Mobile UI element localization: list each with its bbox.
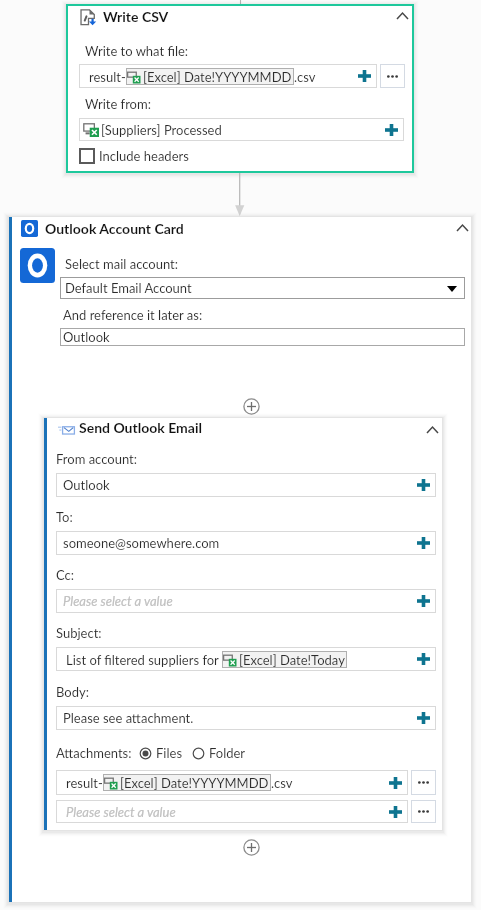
button[interactable]: Add value bbox=[352, 64, 376, 88]
button[interactable]: Send Outlook Email bbox=[43, 417, 443, 831]
button[interactable]: Outlook Account Card bbox=[8, 216, 472, 903]
button[interactable]: Add value bbox=[411, 706, 435, 730]
button[interactable]: Add value bbox=[411, 647, 435, 671]
staticText: Please select a value bbox=[66, 804, 176, 820]
button[interactable]: Include headers bbox=[79, 148, 189, 164]
staticText: Include headers bbox=[99, 148, 189, 164]
staticText: [Excel] Date!YYYYMMDD bbox=[120, 775, 269, 791]
staticText: Write to what file: bbox=[85, 43, 189, 59]
staticText: Outlook bbox=[63, 329, 110, 345]
staticText: someone@somewhere.com bbox=[63, 535, 220, 551]
button[interactable]: Please see attachment. bbox=[56, 706, 436, 730]
button[interactable]: result- bbox=[79, 64, 377, 88]
button[interactable]: [Suppliers] Processed bbox=[79, 118, 404, 141]
button[interactable]: Outlook bbox=[56, 473, 436, 497]
staticText: Please select a value bbox=[63, 593, 173, 609]
staticText: Cc: bbox=[56, 567, 75, 583]
staticText: Files bbox=[156, 745, 183, 761]
staticText: Outlook bbox=[63, 477, 110, 493]
staticText: Subject: bbox=[56, 625, 102, 641]
button[interactable]: Add step bbox=[242, 397, 260, 415]
button[interactable]: someone@somewhere.com bbox=[56, 531, 436, 555]
button[interactable]: Folder bbox=[192, 745, 246, 761]
button[interactable]: Collapse Write CSV bbox=[390, 4, 414, 28]
staticText: [Excel] Date!Today bbox=[239, 652, 345, 668]
staticText: Body: bbox=[56, 684, 89, 700]
button[interactable]: Add value bbox=[411, 531, 435, 555]
staticText: Attachments: bbox=[56, 745, 132, 761]
button[interactable]: Add value bbox=[411, 473, 435, 497]
staticText: [Excel] Date!YYYYMMDD bbox=[143, 69, 292, 85]
staticText: To: bbox=[56, 509, 73, 525]
staticText: Write CSV bbox=[103, 8, 169, 25]
staticText: .csv bbox=[271, 775, 293, 791]
button[interactable]: List of filtered suppliers for bbox=[56, 647, 436, 671]
button[interactable]: Collapse Send Outlook Email bbox=[420, 418, 444, 442]
staticText: List of filtered suppliers for bbox=[66, 652, 222, 668]
staticText: .csv bbox=[294, 69, 316, 85]
button[interactable]: Please select a value bbox=[56, 800, 408, 823]
staticText: Outlook Account Card bbox=[45, 220, 184, 237]
staticText: Write from: bbox=[85, 96, 151, 112]
button[interactable]: Add value bbox=[411, 589, 435, 613]
staticText: And reference it later as: bbox=[63, 307, 203, 323]
button[interactable]: Default Email Account bbox=[60, 277, 465, 299]
button[interactable]: Write CSV bbox=[66, 4, 414, 173]
button[interactable]: Add value bbox=[379, 118, 403, 141]
button[interactable]: Add step bbox=[242, 838, 260, 856]
button[interactable]: Browse bbox=[380, 64, 405, 88]
button[interactable]: Outlook bbox=[60, 328, 465, 346]
staticText: Please see attachment. bbox=[63, 710, 194, 726]
button[interactable]: Files bbox=[139, 745, 183, 761]
button[interactable]: Browse bbox=[411, 770, 436, 795]
staticText: [Suppliers] Processed bbox=[101, 122, 222, 138]
staticText: result- bbox=[66, 775, 103, 791]
staticText: Folder bbox=[209, 745, 246, 761]
staticText: Select mail account: bbox=[65, 256, 179, 272]
button[interactable]: result- bbox=[56, 770, 408, 795]
staticText: From account: bbox=[56, 451, 137, 467]
staticText: result- bbox=[89, 69, 126, 85]
button[interactable]: Add value bbox=[383, 800, 407, 823]
staticText: Send Outlook Email bbox=[79, 419, 202, 436]
button[interactable]: Please select a value bbox=[56, 589, 436, 613]
button[interactable]: Add value bbox=[383, 770, 407, 795]
button[interactable]: Collapse Outlook Account Card bbox=[450, 216, 474, 240]
staticText: Default Email Account bbox=[65, 280, 192, 296]
button[interactable]: Browse bbox=[411, 800, 436, 823]
